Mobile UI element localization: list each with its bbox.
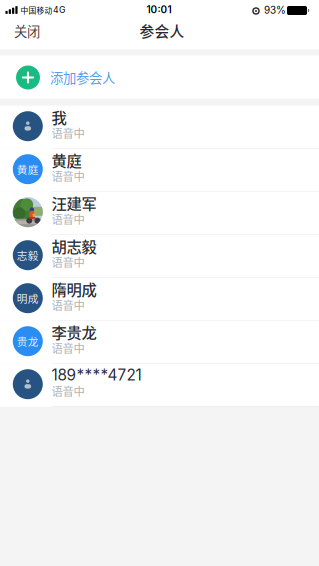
staticText: 明成	[17, 290, 39, 306]
button[interactable]: 我	[0, 106, 319, 149]
staticText: 中国移动	[20, 4, 52, 16]
staticText: 语音中	[51, 254, 84, 270]
staticText: 93%	[264, 4, 286, 16]
staticText: 贵龙	[17, 333, 39, 349]
staticText: 语音中	[51, 383, 84, 399]
staticText: 汪建军	[51, 192, 96, 214]
button[interactable]: 志毅	[0, 235, 319, 278]
staticText: 4G	[53, 4, 65, 15]
button[interactable]: 贵龙	[0, 321, 319, 364]
staticText: 189****4721	[51, 366, 141, 384]
button[interactable]: 黄庭	[0, 149, 319, 192]
staticText: 关闭	[14, 21, 40, 40]
staticText: 黄庭	[17, 161, 39, 177]
staticText: 语音中	[51, 168, 84, 184]
button[interactable]: 汪建军	[0, 192, 319, 235]
staticText: 语音中	[51, 297, 84, 313]
staticText: 黄庭	[51, 149, 81, 171]
button[interactable]: 明成	[0, 278, 319, 321]
button[interactable]: 关闭	[0, 18, 52, 43]
button[interactable]: 添加参会人	[0, 55, 319, 99]
staticText: 10:01	[146, 3, 171, 16]
staticText: 隋明成	[51, 278, 96, 300]
staticText: 志毅	[17, 247, 39, 263]
staticText: 我	[51, 106, 66, 128]
staticText: 胡志毅	[51, 235, 96, 257]
staticText: 李贵龙	[51, 321, 96, 343]
staticText: 语音中	[51, 211, 84, 227]
staticText: 语音中	[51, 340, 84, 356]
button[interactable]: 189****4721	[0, 364, 319, 407]
staticText: 语音中	[51, 125, 84, 141]
staticText: 添加参会人	[50, 67, 115, 87]
staticText: 参会人	[139, 20, 184, 41]
